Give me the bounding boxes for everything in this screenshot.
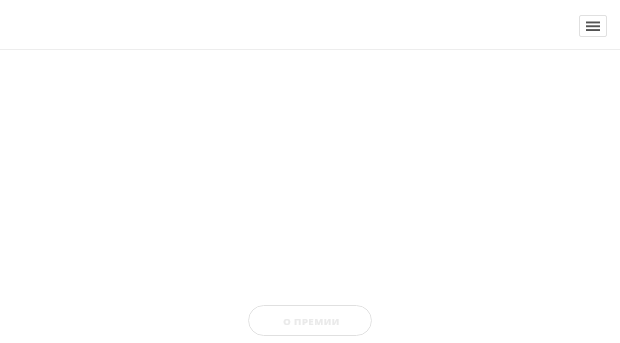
button[interactable]: Open menu — [579, 15, 607, 37]
staticText: О ПРЕМИИ — [283, 315, 340, 328]
button[interactable]: О ПРЕМИИ — [248, 305, 372, 336]
